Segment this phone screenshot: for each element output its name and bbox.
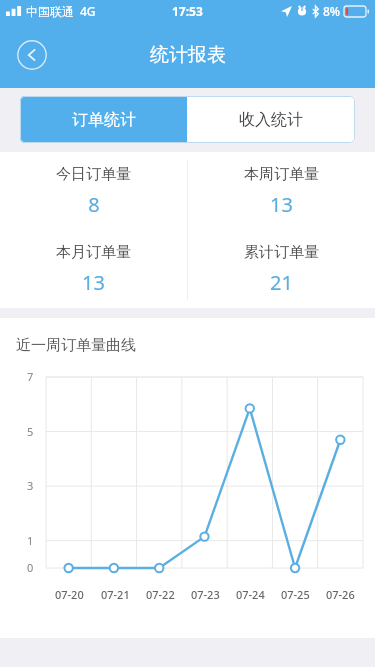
staticText: 21 — [270, 269, 293, 296]
staticText: 7 — [27, 369, 34, 384]
staticText: 07-22 — [146, 587, 175, 602]
staticText: 中国联通 — [26, 4, 74, 19]
staticText: 订单统计 — [72, 110, 136, 130]
button[interactable]: 累计订单量 — [187, 230, 375, 308]
staticText: 07-25 — [281, 587, 310, 602]
staticText: 13 — [82, 269, 105, 296]
staticText: 0 — [27, 560, 34, 575]
staticText: 本月订单量 — [56, 243, 131, 262]
button[interactable]: Back — [17, 40, 47, 70]
staticText: 8% — [323, 3, 341, 19]
staticText: 本周订单量 — [244, 165, 319, 184]
staticText: 近一周订单量曲线 — [16, 336, 136, 355]
button[interactable]: 本月订单量 — [0, 230, 187, 308]
staticText: 统计报表 — [150, 43, 226, 67]
button[interactable]: 今日订单量 — [0, 152, 187, 230]
staticText: 07-23 — [191, 587, 220, 602]
button[interactable]: 订单统计 — [20, 96, 187, 143]
staticText: 8 — [88, 191, 100, 218]
staticText: 07-21 — [101, 587, 130, 602]
staticText: 累计订单量 — [244, 243, 319, 262]
staticText: 07-26 — [326, 587, 355, 602]
button[interactable]: 收入统计 — [187, 96, 355, 143]
staticText: 07-20 — [55, 587, 84, 602]
staticText: 4G — [80, 3, 96, 19]
staticText: 1 — [27, 533, 34, 548]
button[interactable]: 本周订单量 — [187, 152, 375, 230]
staticText: 今日订单量 — [56, 165, 131, 184]
staticText: 13 — [270, 191, 293, 218]
staticText: 3 — [27, 478, 34, 493]
staticText: 07-24 — [236, 587, 265, 602]
staticText: 收入统计 — [239, 110, 303, 130]
staticText: 17:53 — [172, 3, 203, 19]
staticText: 5 — [27, 424, 34, 439]
